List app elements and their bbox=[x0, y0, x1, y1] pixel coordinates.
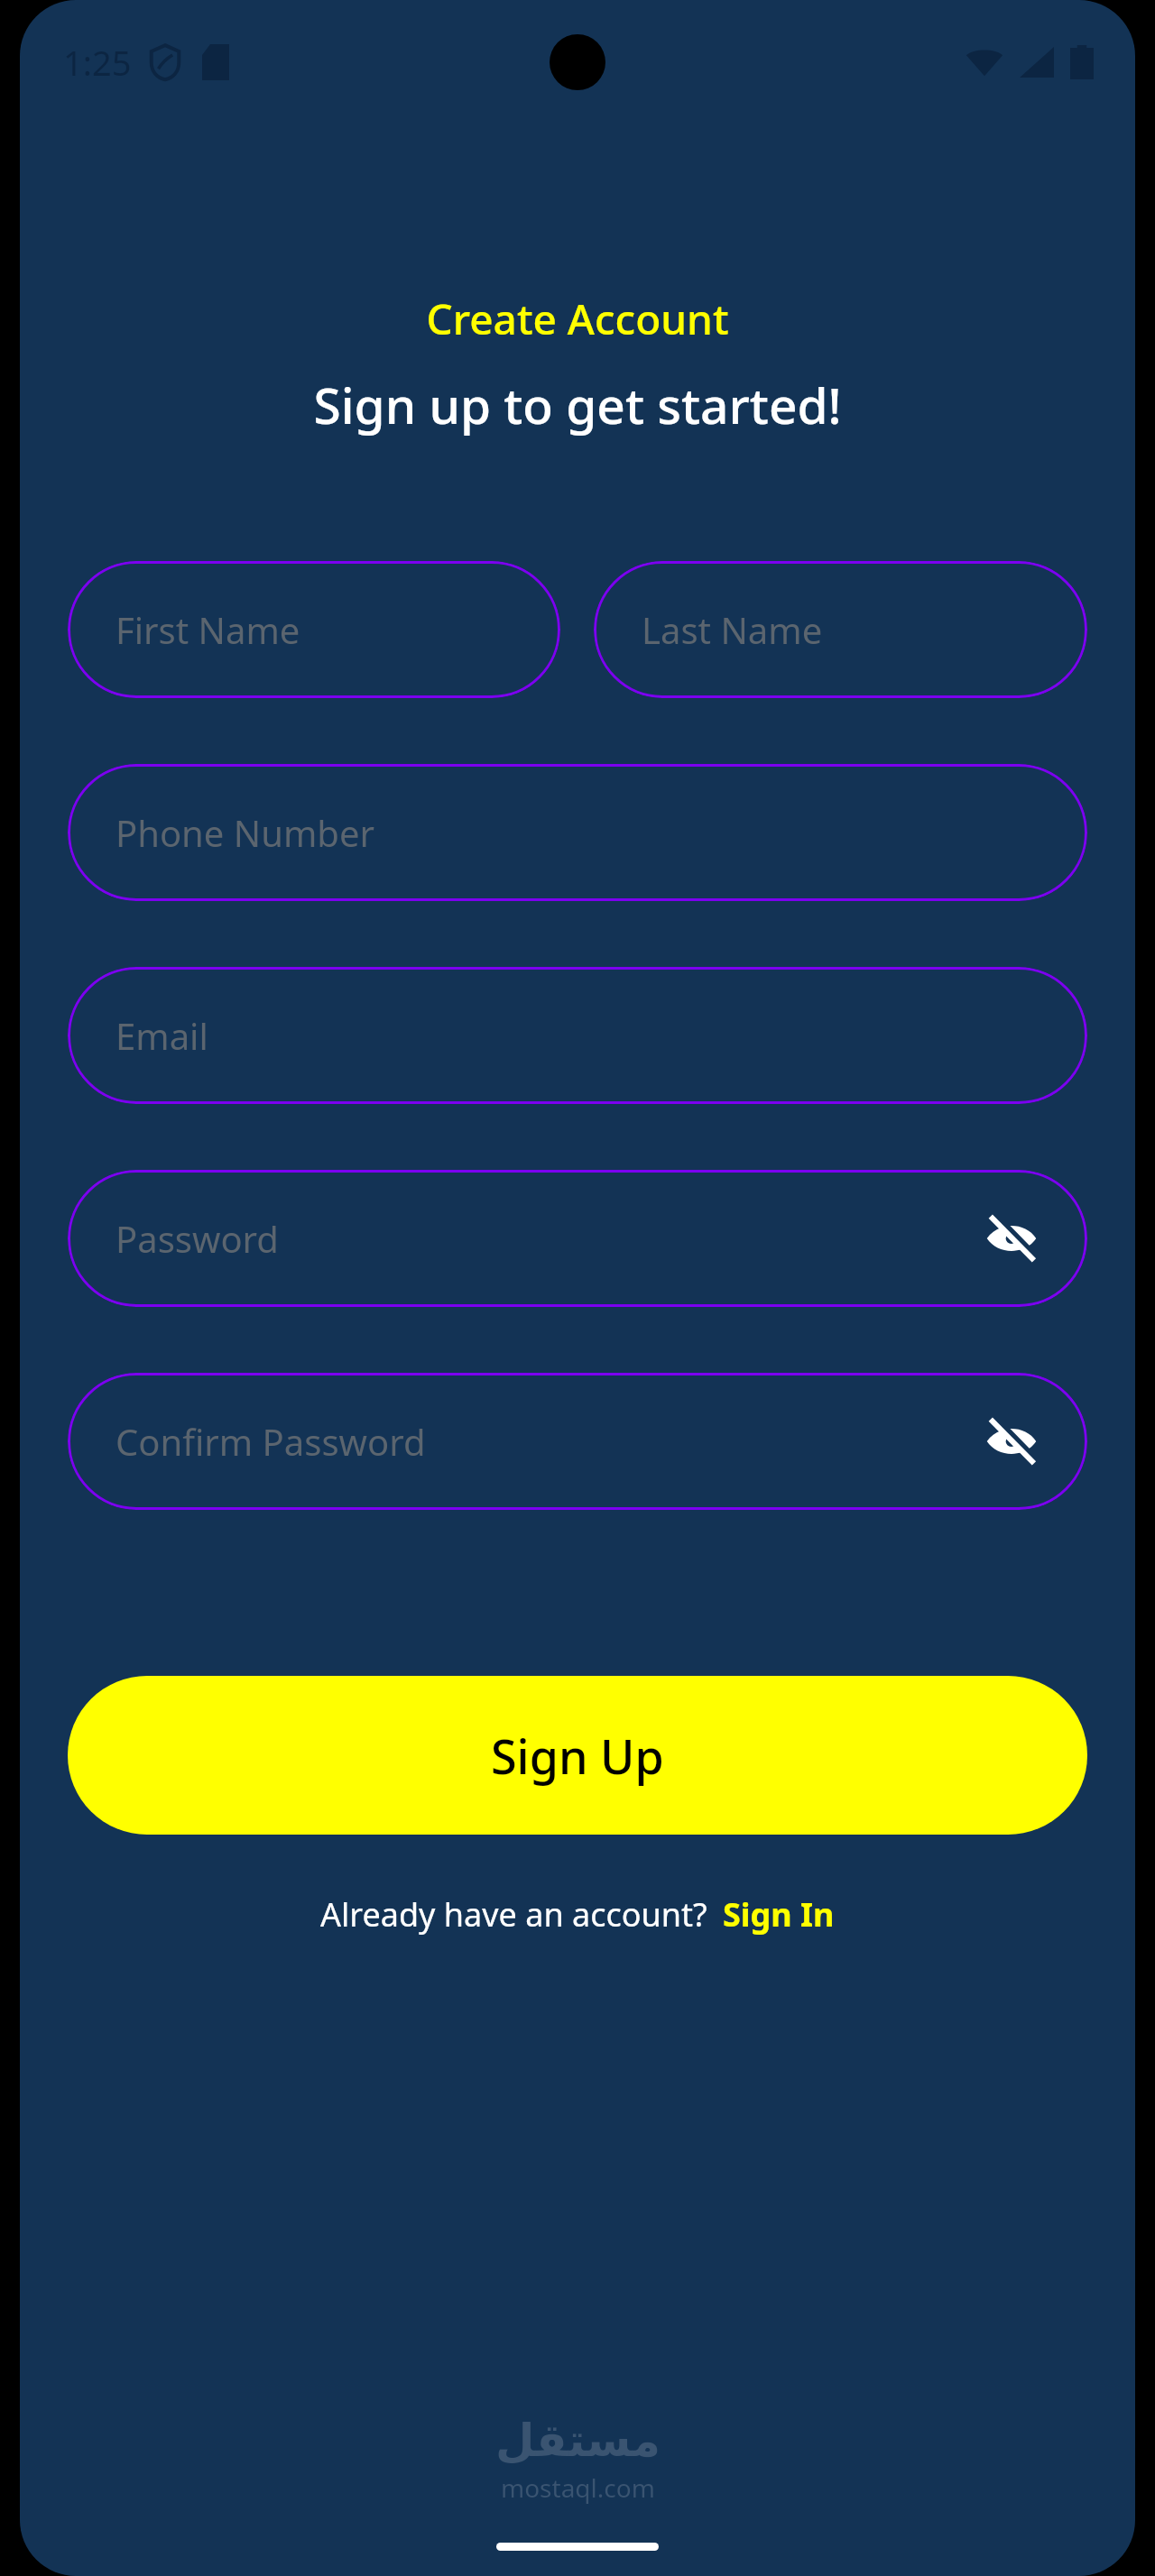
button[interactable]: Sign In bbox=[723, 1892, 835, 1937]
button[interactable]: First Name bbox=[68, 561, 560, 698]
staticText: Sign Up bbox=[491, 1724, 664, 1788]
button[interactable]: Toggle password visibility bbox=[979, 1409, 1044, 1474]
button[interactable]: Email bbox=[68, 967, 1087, 1104]
staticText: مستقل bbox=[495, 2415, 661, 2467]
button[interactable]: Last Name bbox=[594, 561, 1087, 698]
button[interactable]: Phone Number bbox=[68, 764, 1087, 901]
staticText: Last Name bbox=[642, 605, 823, 654]
button[interactable]: Toggle password visibility bbox=[979, 1206, 1044, 1271]
staticText: Phone Number bbox=[115, 808, 374, 857]
button[interactable]: Sign Up bbox=[68, 1676, 1087, 1835]
button[interactable]: Password bbox=[68, 1170, 1087, 1307]
staticText: Create Account bbox=[20, 290, 1135, 347]
staticText: mostaql.com bbox=[501, 2470, 655, 2505]
staticText: Confirm Password bbox=[115, 1417, 426, 1466]
staticText: Sign In bbox=[723, 1892, 835, 1937]
button[interactable]: Confirm Password bbox=[68, 1373, 1087, 1510]
staticText: Already have an account? bbox=[320, 1892, 707, 1937]
staticText: First Name bbox=[115, 605, 300, 654]
staticText: Email bbox=[115, 1011, 208, 1060]
staticText: 1:25 bbox=[63, 39, 132, 86]
staticText: Password bbox=[115, 1214, 279, 1263]
staticText: Sign up to get started! bbox=[20, 371, 1135, 438]
